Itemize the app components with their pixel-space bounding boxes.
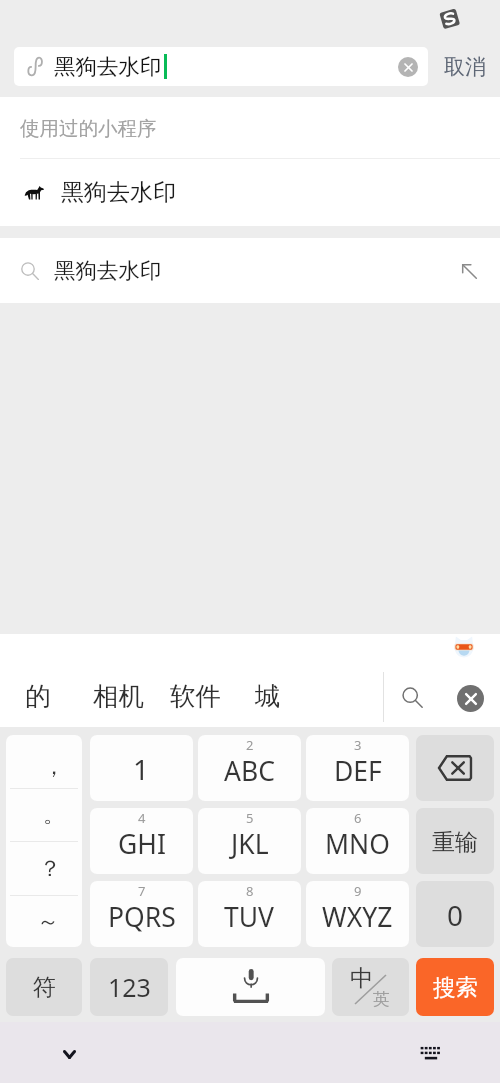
staticText: 。	[43, 801, 65, 829]
staticText: TUV	[224, 899, 275, 935]
button[interactable]: 符	[6, 958, 82, 1016]
button[interactable]: 重输	[416, 808, 494, 874]
button[interactable]: 黑狗去水印	[14, 47, 428, 86]
button[interactable]: Close candidates	[441, 668, 499, 728]
button[interactable]: Switch keyboard	[407, 1032, 455, 1074]
staticText: 9	[354, 882, 362, 900]
staticText: 5	[246, 809, 254, 827]
staticText: JKL	[231, 826, 269, 862]
button[interactable]: 8	[198, 881, 301, 947]
button[interactable]: 取消	[436, 50, 494, 84]
staticText: 软件	[170, 680, 221, 712]
button[interactable]: 2	[198, 735, 301, 801]
button[interactable]: 的	[21, 667, 55, 725]
staticText: 123	[108, 970, 151, 1004]
staticText: 4	[138, 809, 146, 827]
staticText: 3	[354, 736, 362, 754]
button[interactable]: ～	[6, 896, 82, 947]
staticText: WXYZ	[322, 899, 393, 935]
button[interactable]: 相机	[89, 667, 148, 725]
staticText: 英	[373, 989, 390, 1010]
button[interactable]: 123	[90, 958, 168, 1016]
button[interactable]: Backspace	[416, 735, 494, 801]
other: Sogou input logo	[438, 7, 462, 31]
staticText: MNO	[325, 826, 390, 862]
button[interactable]: 软件	[166, 667, 225, 725]
button[interactable]: 城	[251, 667, 285, 725]
button[interactable]: 3	[306, 735, 409, 801]
button[interactable]: 7	[90, 881, 193, 947]
staticText: ？	[39, 855, 61, 883]
button[interactable]: 黑狗去水印	[0, 159, 500, 226]
staticText: 使用过的小程序	[20, 116, 157, 141]
button[interactable]: 。	[6, 789, 82, 841]
staticText: ABC	[224, 753, 275, 789]
button[interactable]: ？	[6, 842, 82, 895]
button[interactable]: 1	[90, 735, 193, 801]
staticText: 重输	[432, 828, 478, 857]
staticText: 7	[138, 882, 146, 900]
staticText: 8	[246, 882, 254, 900]
button[interactable]: Chinese English toggle	[332, 958, 409, 1016]
staticText: 黑狗去水印	[54, 257, 162, 284]
staticText: 相机	[93, 680, 144, 712]
staticText: 6	[354, 809, 362, 827]
staticText: 2	[246, 736, 254, 754]
button[interactable]: 6	[306, 808, 409, 874]
staticText: 搜索	[433, 973, 478, 1001]
staticText: 1	[133, 750, 150, 788]
staticText: 黑狗去水印	[54, 53, 162, 80]
staticText: 黑狗去水印	[61, 178, 176, 207]
button[interactable]: Clear text	[398, 57, 418, 77]
staticText: 中	[350, 964, 373, 993]
button[interactable]: Fill search box	[452, 254, 486, 288]
staticText: 符	[33, 973, 56, 1002]
button[interactable]: Input mascot	[453, 636, 475, 660]
button[interactable]: 搜索	[416, 958, 494, 1016]
button[interactable]: 9	[306, 881, 409, 947]
staticText: 0	[447, 896, 464, 934]
staticText: 的	[25, 680, 51, 712]
staticText: PQRS	[108, 899, 176, 935]
staticText: 城	[255, 680, 281, 712]
button[interactable]: 0	[416, 881, 494, 947]
button[interactable]: Search	[384, 667, 441, 727]
staticText: GHI	[118, 826, 166, 862]
staticText: DEF	[334, 753, 382, 789]
button[interactable]: 黑狗去水印	[0, 238, 500, 303]
staticText: 取消	[444, 54, 486, 80]
button[interactable]: ，	[6, 735, 82, 788]
button[interactable]: 4	[90, 808, 193, 874]
button[interactable]: 5	[198, 808, 301, 874]
button[interactable]: Space and voice input	[176, 958, 325, 1016]
button[interactable]: Hide keyboard	[44, 1034, 94, 1074]
staticText: ～	[37, 908, 59, 936]
staticText: ，	[43, 753, 65, 781]
